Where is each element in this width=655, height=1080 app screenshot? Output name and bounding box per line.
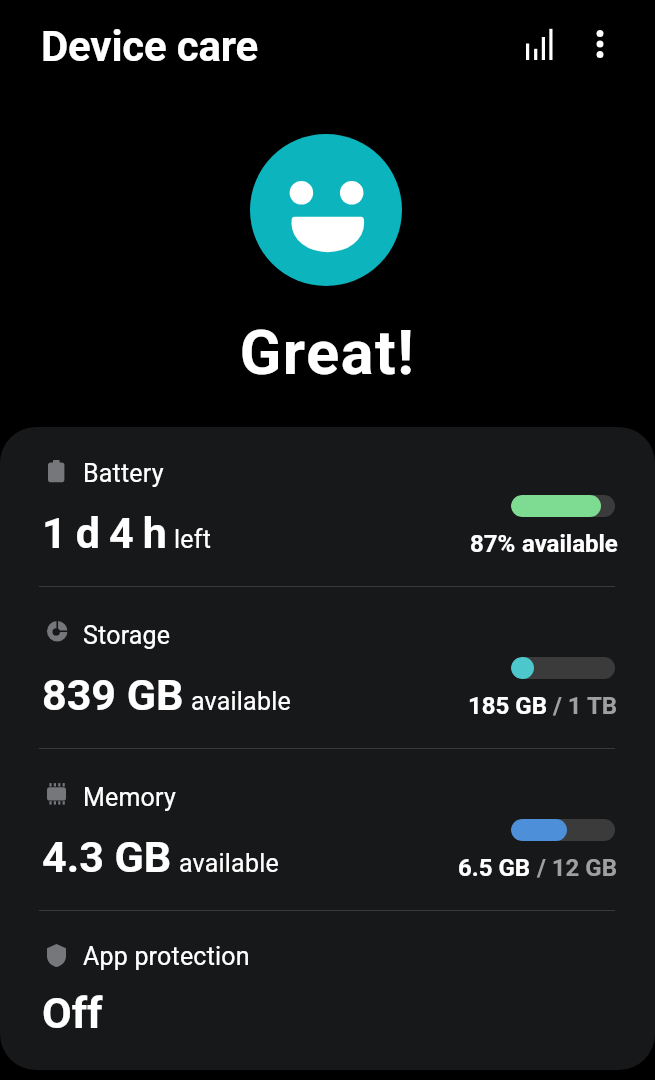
staticText: left (174, 525, 212, 554)
staticText: available (191, 687, 291, 716)
button[interactable]: More options (574, 18, 626, 70)
staticText: available (516, 530, 618, 558)
staticText: Memory (83, 783, 176, 812)
staticText: 4.3 GB (42, 832, 172, 882)
staticText: / 12 GB (531, 854, 618, 882)
button[interactable]: Usage statistics (513, 18, 565, 70)
staticText: Storage (83, 621, 171, 650)
staticText: Off (42, 988, 103, 1038)
button[interactable]: Memory (0, 751, 655, 910)
staticText: / 1 TB (547, 692, 618, 720)
staticText: 185 GB (468, 692, 547, 720)
button[interactable]: Storage (0, 589, 655, 748)
staticText: Device care (41, 22, 258, 71)
staticText: Battery (83, 459, 164, 488)
staticText: Great! (0, 317, 655, 388)
button[interactable]: App protection (0, 910, 655, 1070)
staticText: 839 GB (42, 670, 184, 720)
staticText: App protection (83, 942, 250, 971)
staticText: 6.5 GB (458, 854, 531, 882)
staticText: 1 d 4 h (42, 508, 167, 558)
button[interactable]: Battery (0, 427, 655, 586)
staticText: available (179, 849, 279, 878)
staticText: 87% (470, 530, 516, 558)
